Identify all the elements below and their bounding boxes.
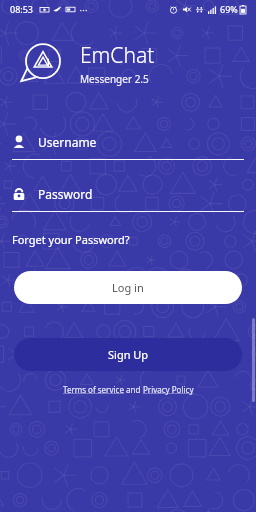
staticText: Terms of service — [63, 384, 124, 395]
staticText: EmChat — [80, 41, 155, 70]
button[interactable]: Terms of service — [63, 384, 124, 395]
staticText: Forget your Password? — [12, 232, 130, 247]
staticText: Log in — [112, 280, 144, 295]
button[interactable]: Password — [0, 186, 256, 212]
staticText: Password — [38, 186, 93, 202]
button[interactable]: Privacy Policy — [143, 384, 194, 395]
button[interactable]: Forget your Password? — [12, 230, 130, 249]
staticText: Sign Up — [108, 347, 149, 362]
staticText: 08:53 — [10, 3, 34, 15]
staticText: 69% — [220, 3, 238, 15]
staticText: Username — [38, 134, 97, 150]
staticText: Privacy Policy — [143, 384, 194, 395]
button[interactable]: Username — [0, 134, 256, 160]
button[interactable]: Sign Up — [14, 338, 242, 371]
staticText: Messenger 2.5 — [80, 72, 149, 86]
staticText: and — [124, 384, 143, 395]
button[interactable]: Log in — [14, 271, 242, 304]
